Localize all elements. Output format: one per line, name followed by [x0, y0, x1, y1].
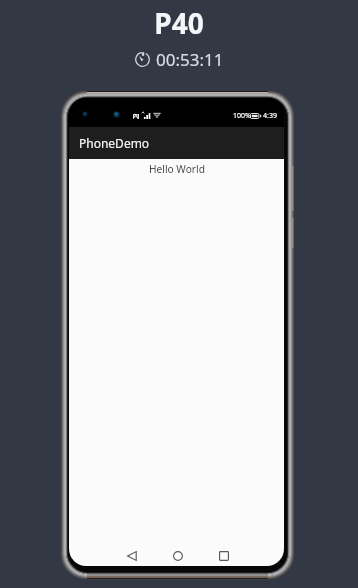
staticText: 100%: [233, 111, 251, 121]
button[interactable]: Back: [121, 544, 143, 566]
staticText: P40: [154, 4, 204, 42]
button[interactable]: Home: [167, 544, 189, 566]
button[interactable]: Recents: [213, 544, 235, 566]
staticText: Hello World: [149, 162, 205, 176]
staticText: 00:53:11: [156, 48, 224, 71]
staticText: 4:39: [263, 111, 277, 121]
staticText: PhoneDemo: [79, 135, 150, 151]
